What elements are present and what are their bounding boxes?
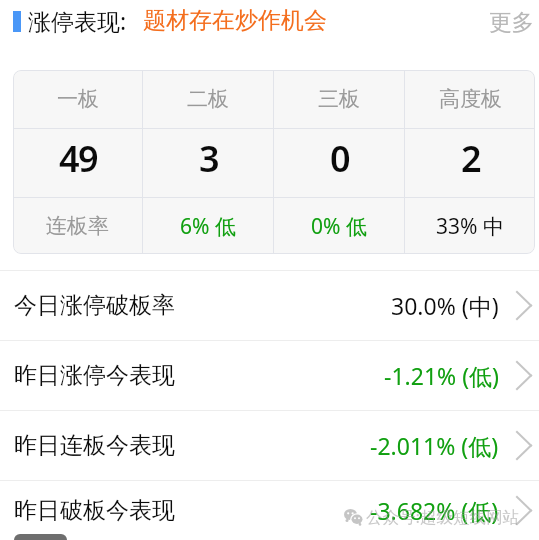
staticText: 昨日涨停今表现 [14, 361, 175, 390]
staticText: 0% 低 [311, 212, 367, 241]
staticText: 公众号:超级短线网站 [366, 505, 519, 528]
staticText: 昨日连板今表现 [14, 431, 175, 460]
staticText: 题材存在炒作机会 [143, 6, 327, 35]
staticText: 0 [330, 134, 350, 183]
staticText: 三板 [318, 86, 360, 112]
button[interactable]: 昨日连板今表现 [0, 411, 539, 480]
staticText: 33% 中 [436, 212, 504, 241]
other: View details [516, 361, 532, 390]
staticText: -1.21% (低) [384, 360, 499, 391]
staticText: -3.682% (低) [370, 495, 499, 526]
other: View details [516, 291, 532, 320]
staticText: -2.011% (低) [370, 430, 499, 461]
staticText: 30.0% (中) [391, 290, 499, 321]
other: View details [516, 496, 532, 525]
button[interactable]: 昨日涨停今表现 [0, 341, 539, 410]
button[interactable]: 今日涨停破板率 [0, 271, 539, 340]
staticText: 3 [199, 134, 219, 183]
staticText: 昨日破板今表现 [14, 496, 175, 525]
other: View details [516, 431, 532, 460]
staticText: 6% 低 [180, 212, 236, 241]
staticText: 涨停表现: [28, 5, 127, 36]
staticText: 连板率 [46, 213, 109, 239]
staticText: 更多 [489, 8, 534, 36]
button[interactable]: 昨日破板今表现 [0, 481, 539, 540]
staticText: 高度板 [439, 86, 502, 112]
staticText: 2 [461, 134, 481, 183]
staticText: 二板 [187, 86, 229, 112]
staticText: 49 [59, 134, 98, 183]
staticText: 一板 [57, 86, 99, 112]
staticText: 今日涨停破板率 [14, 291, 175, 320]
button[interactable]: 更多 [489, 8, 534, 36]
